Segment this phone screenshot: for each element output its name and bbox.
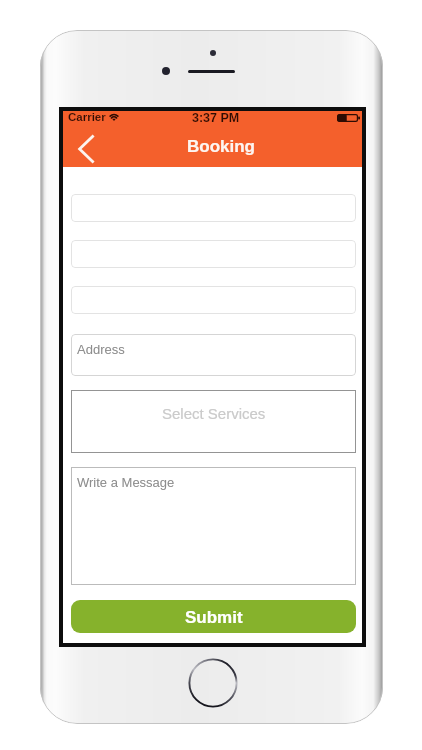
button[interactable]: Select Services (71, 390, 356, 453)
staticText: Select Services (162, 405, 266, 422)
staticText: Submit (185, 608, 243, 627)
button[interactable]: Submit (71, 600, 356, 633)
button[interactable] (71, 240, 356, 268)
staticText: Address (77, 342, 125, 357)
staticText: Carrier (68, 111, 106, 124)
button[interactable]: Address (71, 334, 356, 376)
button[interactable]: Write a Message (71, 467, 356, 585)
staticText: Write a Message (77, 475, 175, 490)
staticText: Booking (187, 137, 255, 156)
button[interactable] (71, 286, 356, 314)
button[interactable] (71, 194, 356, 222)
staticText: 3:37 PM (192, 111, 240, 125)
button[interactable]: Back (68, 129, 104, 169)
